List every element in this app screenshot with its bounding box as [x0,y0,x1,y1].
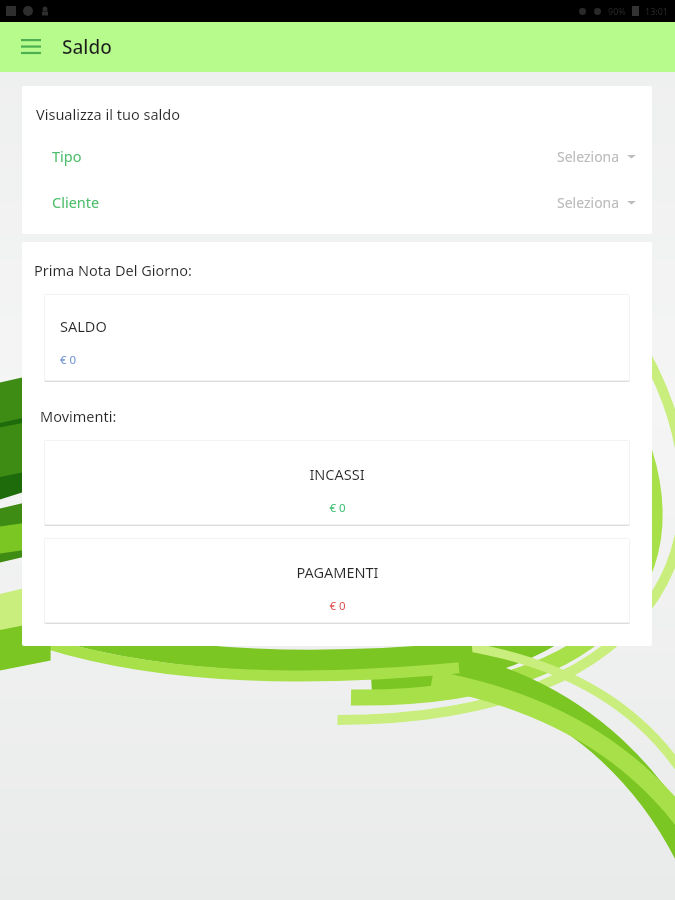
staticText: Cliente [52,192,100,212]
button[interactable]: INCASSI [44,440,630,526]
staticText: Seleziona [557,147,620,166]
staticText: € 0 [329,500,346,516]
staticText: Movimenti: [40,406,117,426]
staticText: 13:01 [645,5,669,17]
button[interactable]: Open navigation menu [14,30,48,64]
staticText: SALDO [60,316,107,336]
staticText: PAGAMENTI [296,562,379,582]
button[interactable]: SALDO [44,294,630,382]
staticText: Visualizza il tuo saldo [36,104,180,124]
staticText: € 0 [329,598,346,614]
staticText: Saldo [62,34,112,60]
staticText: 90% [608,5,626,17]
staticText: € 0 [60,352,77,368]
staticText: Prima Nota Del Giorno: [34,260,192,280]
button[interactable]: PAGAMENTI [44,538,630,624]
button[interactable]: Tipo [36,144,636,168]
staticText: Tipo [52,146,82,166]
staticText: INCASSI [309,464,365,484]
button[interactable]: Cliente [36,190,636,214]
staticText: Seleziona [557,193,620,212]
